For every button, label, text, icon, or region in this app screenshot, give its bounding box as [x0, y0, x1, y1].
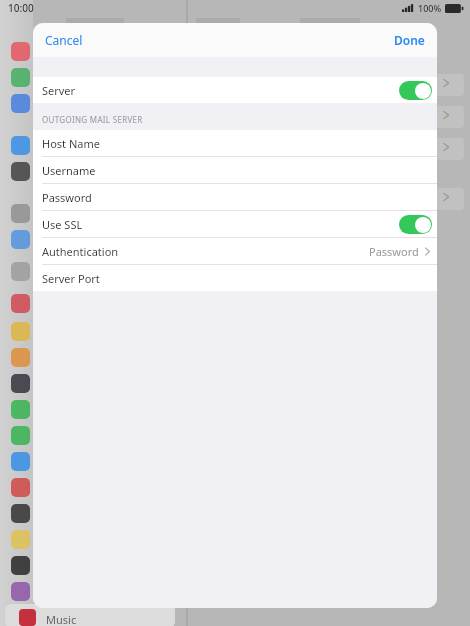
staticText: Server: [42, 83, 76, 98]
staticText: Server Port: [42, 271, 100, 286]
staticText: Music: [46, 612, 77, 626]
staticText: OUTGOING MAIL SERVER: [42, 114, 143, 125]
button[interactable]: Username: [33, 157, 437, 183]
button[interactable]: Use SSL: [33, 211, 437, 237]
staticText: Cancel: [45, 32, 83, 48]
button[interactable]: Server Port: [33, 265, 437, 291]
button[interactable]: Host Name: [33, 130, 437, 156]
staticText: Authentication: [42, 244, 119, 259]
staticText: Password: [369, 244, 419, 259]
button[interactable]: Authentication: [33, 238, 437, 264]
staticText: Password: [42, 190, 92, 205]
staticText: Username: [42, 163, 96, 178]
button[interactable]: Server toggle, on: [399, 81, 432, 100]
button[interactable]: Cancel: [33, 25, 95, 55]
staticText: 10:00: [8, 1, 34, 15]
staticText: Host Name: [42, 136, 100, 151]
staticText: 100%: [418, 2, 442, 14]
button[interactable]: Done: [382, 25, 437, 55]
button[interactable]: Password: [33, 184, 437, 210]
staticText: Use SSL: [42, 217, 83, 232]
staticText: Done: [394, 32, 425, 48]
